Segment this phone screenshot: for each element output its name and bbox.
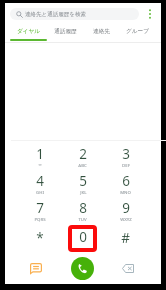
button[interactable]: 通話履歴 (47, 21, 83, 41)
button[interactable]: 6 (104, 171, 147, 198)
staticText: WXYZ (120, 216, 132, 222)
button[interactable]: 3 (104, 144, 147, 171)
button[interactable]: 4 (18, 171, 61, 198)
staticText: # (121, 229, 130, 247)
staticText: 0 (79, 228, 87, 246)
button[interactable]: 2 (61, 144, 104, 171)
button[interactable]: 7 (18, 198, 61, 225)
button[interactable]: Send message (13, 255, 59, 281)
button[interactable]: Call (59, 255, 105, 281)
button[interactable]: More options (144, 7, 156, 21)
staticText: ダイヤル (17, 28, 40, 35)
staticText: ABC (78, 162, 87, 168)
button[interactable]: ダイヤル (10, 21, 47, 41)
staticText: DEF (122, 162, 130, 168)
staticText: 8 (79, 199, 87, 217)
staticText: JKL (80, 189, 87, 195)
staticText: MNO (120, 189, 131, 195)
staticText: 2 (79, 145, 87, 163)
staticText: 3 (122, 145, 130, 163)
staticText: 連絡先と通話履歴を検索 (25, 11, 86, 18)
staticText: PQRS (34, 216, 46, 222)
button[interactable]: 9 (104, 198, 147, 225)
staticText: 4 (36, 172, 44, 190)
button[interactable]: Backspace (105, 255, 151, 281)
button[interactable]: 8 (61, 198, 104, 225)
button[interactable]: グループ (119, 21, 155, 41)
staticText: 6 (122, 172, 130, 190)
staticText: 9 (122, 199, 130, 217)
staticText: 連絡先 (93, 28, 110, 35)
staticText: 1 (36, 145, 44, 163)
button[interactable]: 連絡先 (83, 21, 119, 41)
staticText: GHI (36, 189, 44, 195)
staticText: 5 (79, 172, 87, 190)
staticText: * (36, 229, 44, 247)
button[interactable]: 1 (18, 144, 61, 171)
staticText: 通話履歴 (54, 28, 77, 35)
button[interactable]: * (18, 225, 61, 252)
staticText: TUV (78, 216, 87, 222)
button[interactable]: 0 (61, 225, 104, 252)
button[interactable]: 連絡先と通話履歴を検索 (10, 8, 139, 20)
staticText: グループ (126, 28, 149, 35)
staticText: 7 (36, 199, 44, 217)
staticText: ∞ (38, 162, 42, 167)
button[interactable]: 5 (61, 171, 104, 198)
button[interactable]: # (104, 225, 147, 252)
